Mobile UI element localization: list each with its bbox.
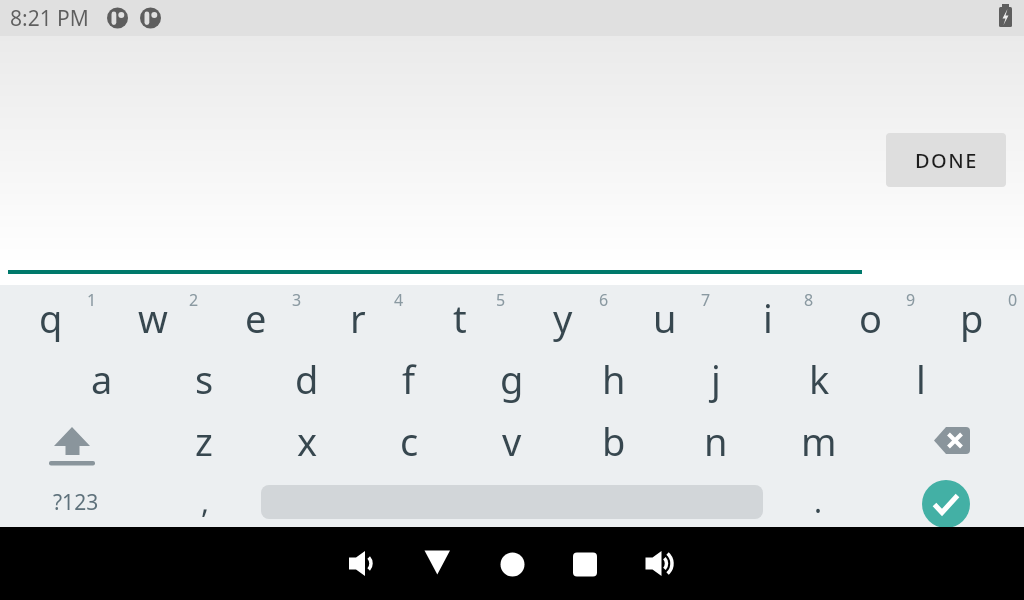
button[interactable]: ,: [165, 471, 245, 531]
staticText: ,: [201, 481, 210, 522]
staticText: t: [453, 292, 467, 344]
button[interactable]: v: [472, 411, 552, 471]
staticText: s: [195, 353, 214, 405]
staticText: q: [39, 292, 63, 344]
button[interactable]: ?123: [36, 472, 116, 532]
staticText: m: [801, 415, 837, 467]
button[interactable]: [922, 480, 970, 528]
staticText: .: [814, 481, 823, 522]
button[interactable]: j: [676, 349, 756, 409]
staticText: w: [138, 292, 168, 344]
button[interactable]: [332, 534, 392, 594]
button[interactable]: l: [881, 349, 961, 409]
button[interactable]: x: [267, 411, 347, 471]
staticText: h: [602, 353, 626, 405]
staticText: 6: [599, 289, 609, 311]
button[interactable]: [557, 534, 617, 594]
button[interactable]: m: [779, 411, 859, 471]
staticText: 8: [804, 289, 814, 311]
button[interactable]: k: [779, 349, 859, 409]
button[interactable]: f: [369, 349, 449, 409]
staticText: 5: [496, 289, 506, 311]
staticText: 0: [1008, 289, 1018, 311]
staticText: 8:21 PM: [10, 4, 89, 32]
staticText: 2: [189, 289, 199, 311]
staticText: 4: [394, 289, 404, 311]
staticText: 1: [87, 289, 97, 311]
staticText: o: [859, 292, 882, 344]
button[interactable]: [31, 413, 111, 473]
button[interactable]: g: [472, 349, 552, 409]
staticText: a: [91, 353, 113, 405]
staticText: f: [402, 353, 416, 405]
button[interactable]: z: [164, 411, 244, 471]
button[interactable]: [632, 534, 692, 594]
staticText: x: [297, 415, 318, 467]
button[interactable]: d: [267, 349, 347, 409]
button[interactable]: u: [625, 288, 705, 348]
staticText: 9: [906, 289, 916, 311]
button[interactable]: q: [11, 288, 91, 348]
staticText: z: [195, 415, 213, 467]
button[interactable]: a: [62, 349, 142, 409]
staticText: d: [295, 353, 319, 405]
button[interactable]: n: [676, 411, 756, 471]
button[interactable]: o: [830, 288, 910, 348]
staticText: u: [653, 292, 677, 344]
staticText: n: [704, 415, 728, 467]
button[interactable]: .: [778, 471, 858, 531]
button[interactable]: s: [164, 349, 244, 409]
staticText: 7: [701, 289, 711, 311]
staticText: y: [553, 292, 573, 344]
button[interactable]: i: [728, 288, 808, 348]
button[interactable]: [482, 534, 542, 594]
staticText: i: [763, 292, 773, 344]
staticText: e: [245, 292, 267, 344]
staticText: j: [711, 353, 721, 405]
button[interactable]: y: [523, 288, 603, 348]
staticText: b: [602, 415, 626, 467]
staticText: v: [502, 415, 522, 467]
staticText: g: [500, 353, 524, 405]
staticText: p: [960, 292, 984, 344]
button[interactable]: DONE: [886, 133, 1006, 187]
button[interactable]: h: [574, 349, 654, 409]
button[interactable]: b: [574, 411, 654, 471]
staticText: DONE: [915, 147, 978, 174]
button[interactable]: c: [369, 411, 449, 471]
staticText: 3: [292, 289, 302, 311]
button[interactable]: e: [216, 288, 296, 348]
button[interactable]: [911, 413, 991, 473]
staticText: l: [916, 353, 926, 405]
button[interactable]: [407, 534, 467, 594]
button[interactable]: t: [420, 288, 500, 348]
button[interactable]: p: [932, 288, 1012, 348]
staticText: ?123: [53, 488, 99, 517]
staticText: c: [400, 415, 419, 467]
staticText: r: [350, 292, 366, 344]
staticText: k: [809, 353, 830, 405]
button[interactable]: r: [318, 288, 398, 348]
button[interactable]: w: [113, 288, 193, 348]
